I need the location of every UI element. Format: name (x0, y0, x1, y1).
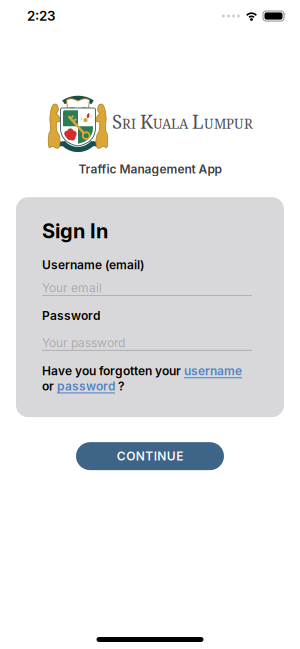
staticText: ? (115, 379, 125, 393)
staticText: RI (122, 113, 136, 133)
button[interactable]: password (57, 379, 115, 393)
staticText: CONTINUE (117, 449, 183, 463)
staticText: Traffic Management App (78, 162, 221, 176)
staticText: Have you forgotten your (42, 364, 184, 378)
staticText: L (192, 107, 204, 135)
staticText: 2:23 (27, 8, 55, 24)
staticText: Username (email) (42, 258, 144, 272)
staticText: UALA (153, 113, 188, 133)
button[interactable]: CONTINUE (76, 442, 224, 470)
staticText: password (57, 379, 115, 393)
staticText: or (42, 379, 57, 393)
button[interactable]: Your password (42, 336, 252, 351)
staticText: username (184, 364, 242, 378)
staticText: Your email (42, 281, 102, 295)
staticText: Password (42, 309, 100, 323)
staticText: Your password (42, 336, 125, 350)
staticText: K (140, 107, 153, 135)
button[interactable]: Your email (42, 281, 252, 296)
staticText: S (112, 107, 122, 135)
staticText: Sign In (42, 219, 108, 243)
staticText: UMPUR (204, 113, 253, 133)
button[interactable]: username (184, 364, 242, 378)
